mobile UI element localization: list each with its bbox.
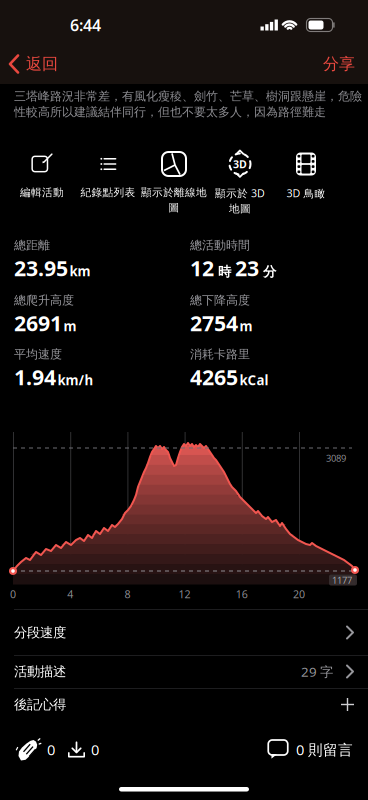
staticText: 0: [91, 740, 99, 759]
staticText: 3D: [233, 157, 247, 171]
staticText: 分段速度: [14, 624, 66, 641]
staticText: 紀錄點列表: [80, 186, 135, 199]
button[interactable]: 分段速度: [0, 610, 368, 655]
button[interactable]: 活動描述: [0, 655, 368, 687]
staticText: 0: [10, 587, 16, 601]
button[interactable]: 分享: [323, 44, 368, 84]
staticText: 3089: [326, 452, 346, 464]
staticText: 16: [236, 587, 248, 601]
staticText: 後記心得: [14, 696, 66, 713]
staticText: 4: [67, 587, 73, 601]
staticText: 三塔峰路況非常差，有風化瘦稜、劍竹、芒草、樹洞跟懸崖，危險: [14, 89, 362, 104]
staticText: 29 字: [301, 663, 333, 680]
staticText: 8: [124, 587, 130, 601]
button[interactable]: 3D 鳥瞰: [273, 151, 339, 200]
staticText: 0: [47, 740, 55, 759]
button[interactable]: 紀錄點列表: [75, 151, 141, 199]
staticText: 返回: [26, 54, 58, 74]
staticText: 4265: [190, 363, 238, 391]
staticText: km/h: [57, 371, 93, 389]
staticText: kCal: [239, 371, 268, 389]
staticText: 圖: [168, 201, 179, 214]
staticText: 23: [235, 254, 259, 282]
button[interactable]: 返回: [0, 44, 58, 84]
staticText: 編輯活動: [20, 186, 64, 199]
staticText: 地圖: [229, 202, 251, 215]
staticText: 總距離: [14, 238, 50, 253]
button[interactable]: 拍手: [16, 738, 55, 761]
staticText: 2691: [14, 309, 62, 337]
staticText: m: [63, 317, 76, 335]
staticText: 總下降高度: [190, 293, 250, 308]
staticText: 分: [263, 264, 276, 280]
button[interactable]: 後記心得: [0, 688, 368, 720]
staticText: 性較高所以建議結伴同行，但也不要太多人，因為路徑難走: [14, 105, 326, 119]
button[interactable]: 留言: [268, 740, 368, 759]
staticText: 12: [190, 254, 214, 282]
staticText: 6:44: [70, 14, 101, 36]
staticText: 時: [218, 264, 231, 280]
button[interactable]: 3D: [207, 151, 273, 215]
staticText: 平均速度: [14, 347, 62, 362]
staticText: 顯示於離線地: [141, 186, 207, 199]
staticText: 3D 鳥瞰: [286, 186, 325, 200]
staticText: 20: [293, 587, 305, 601]
staticText: 總活動時間: [190, 238, 250, 253]
staticText: 1177: [332, 574, 352, 586]
button[interactable]: 顯示於離線地: [141, 151, 207, 214]
staticText: 分享: [323, 54, 355, 74]
staticText: 0 則留言: [296, 740, 353, 759]
staticText: m: [239, 317, 252, 335]
button[interactable]: 編輯活動: [9, 151, 75, 199]
staticText: km: [69, 262, 90, 280]
staticText: 12: [179, 587, 191, 601]
button[interactable]: 下載: [68, 740, 99, 759]
staticText: 消耗卡路里: [190, 347, 250, 362]
staticText: 2754: [190, 309, 238, 337]
staticText: 顯示於 3D: [215, 186, 265, 200]
staticText: 活動描述: [14, 663, 66, 680]
staticText: 23.95: [14, 254, 68, 282]
staticText: 總爬升高度: [14, 293, 74, 308]
staticText: 1.94: [14, 363, 56, 391]
